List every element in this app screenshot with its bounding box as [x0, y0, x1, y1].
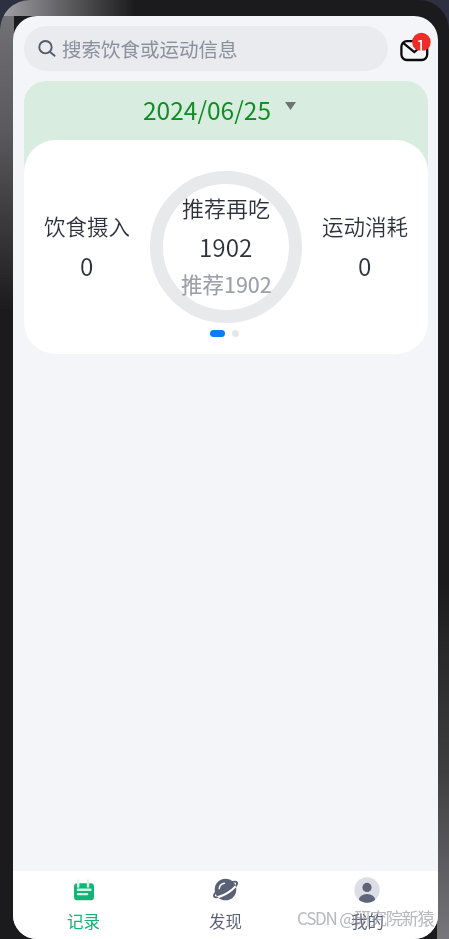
button[interactable]: 搜索饮食或运动信息 [24, 26, 388, 71]
staticText: 饮食摄入 [44, 210, 131, 241]
staticText: 0 [358, 248, 372, 283]
button[interactable]: Messages [395, 31, 431, 67]
staticText: CSDN @研究院新猿 [297, 905, 434, 930]
staticText: 记录 [67, 909, 100, 933]
staticText: 1902 [199, 229, 253, 264]
staticText: 发现 [209, 909, 242, 933]
staticText: 推荐再吃 [182, 191, 271, 223]
staticText: 2024/06/25 [143, 92, 271, 127]
staticText: 搜索饮食或运动信息 [62, 34, 238, 62]
staticText: 推荐1902 [181, 268, 272, 299]
staticText: 运动消耗 [322, 210, 409, 241]
staticText: 我的 [351, 909, 384, 933]
button[interactable]: 2024/06/25 [13, 81, 438, 140]
staticText: 1 [412, 33, 430, 56]
staticText: 0 [80, 248, 94, 283]
button[interactable]: 发现 [154, 871, 296, 939]
button[interactable]: 我的 [296, 871, 438, 939]
button[interactable]: 记录 [13, 871, 154, 939]
